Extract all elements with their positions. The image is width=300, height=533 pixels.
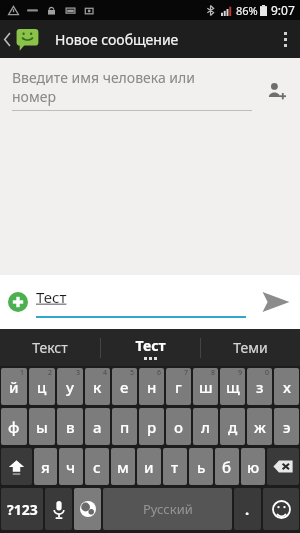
- button[interactable]: ф: [1, 408, 27, 445]
- button[interactable]: е: [112, 368, 137, 405]
- button[interactable]: ?123: [1, 488, 43, 530]
- staticText: р: [147, 417, 157, 437]
- staticText: л: [201, 417, 210, 437]
- button[interactable]: ю: [241, 448, 265, 485]
- staticText: ж: [254, 417, 266, 437]
- button[interactable]: Send: [252, 275, 300, 329]
- staticText: г: [175, 377, 182, 397]
- button[interactable]: ч: [59, 448, 83, 485]
- button[interactable]: и: [137, 448, 161, 485]
- staticText: ч: [66, 457, 76, 477]
- staticText: .: [245, 499, 250, 519]
- button[interactable]: Change keyboard language: [74, 488, 101, 530]
- button[interactable]: м: [111, 448, 135, 485]
- staticText: й: [9, 377, 19, 397]
- staticText: я: [41, 457, 50, 477]
- staticText: ы: [36, 417, 48, 437]
- staticText: 86%: [236, 3, 258, 18]
- staticText: а: [93, 417, 102, 437]
- staticText: 2: [48, 368, 53, 378]
- button[interactable]: Add attachment: [0, 284, 36, 320]
- staticText: т: [171, 457, 179, 477]
- button[interactable]: а: [85, 408, 110, 445]
- button[interactable]: в: [57, 408, 83, 445]
- staticText: н: [147, 377, 157, 397]
- button[interactable]: б: [215, 448, 239, 485]
- staticText: ?123: [7, 500, 38, 519]
- button[interactable]: Voice input: [45, 488, 72, 530]
- staticText: д: [228, 417, 238, 437]
- button[interactable]: й: [1, 368, 27, 405]
- button[interactable]: н: [139, 368, 164, 405]
- staticText: 6: [157, 368, 162, 378]
- staticText: 9:07: [271, 2, 295, 18]
- button[interactable]: ы: [29, 408, 55, 445]
- staticText: 3: [76, 368, 81, 378]
- button[interactable]: г: [166, 368, 191, 405]
- staticText: с: [93, 457, 101, 477]
- staticText: ц: [37, 377, 47, 397]
- staticText: ю: [247, 457, 260, 477]
- staticText: Тест: [36, 287, 67, 307]
- button[interactable]: э: [274, 408, 299, 445]
- button[interactable]: с: [85, 448, 109, 485]
- staticText: и: [144, 457, 154, 477]
- staticText: 5: [130, 368, 135, 378]
- button[interactable]: о: [166, 408, 191, 445]
- staticText: 7: [184, 368, 189, 378]
- staticText: х: [283, 377, 291, 397]
- staticText: п: [120, 417, 130, 437]
- staticText: Русский: [143, 500, 193, 518]
- button[interactable]: .: [234, 488, 261, 530]
- staticText: ф: [8, 417, 20, 437]
- button[interactable]: Shift: [1, 448, 32, 485]
- staticText: Введите имя человека или номер: [12, 68, 195, 106]
- staticText: Теми: [233, 338, 268, 357]
- button[interactable]: Up: [0, 20, 45, 58]
- staticText: 0: [265, 368, 270, 378]
- button[interactable]: к: [85, 368, 110, 405]
- button[interactable]: п: [112, 408, 137, 445]
- button[interactable]: Add recipient: [252, 68, 300, 114]
- staticText: Текст: [32, 338, 68, 357]
- button[interactable]: х: [274, 368, 299, 405]
- button[interactable]: ж: [247, 408, 272, 445]
- button[interactable]: д: [220, 408, 245, 445]
- button[interactable]: Emoji: [263, 488, 299, 530]
- staticText: Новое сообщение: [55, 30, 179, 49]
- staticText: 4: [103, 368, 108, 378]
- staticText: м: [117, 457, 129, 477]
- staticText: з: [256, 377, 264, 397]
- staticText: щ: [226, 377, 240, 397]
- staticText: 8: [211, 368, 216, 378]
- button[interactable]: л: [193, 408, 218, 445]
- button[interactable]: Текст: [0, 329, 100, 366]
- staticText: у: [66, 377, 74, 397]
- button[interactable]: т: [163, 448, 187, 485]
- staticText: ш: [199, 377, 213, 397]
- button[interactable]: р: [139, 408, 164, 445]
- button[interactable]: я: [34, 448, 57, 485]
- button[interactable]: Backspace: [267, 448, 299, 485]
- staticText: б: [222, 457, 232, 477]
- staticText: ь: [197, 457, 206, 477]
- button[interactable]: ш: [193, 368, 218, 405]
- staticText: Тест: [135, 336, 166, 355]
- staticText: о: [174, 417, 184, 437]
- staticText: 9: [238, 368, 243, 378]
- staticText: е: [120, 377, 129, 397]
- button[interactable]: ц: [29, 368, 55, 405]
- button[interactable]: у: [57, 368, 83, 405]
- button[interactable]: Тест: [101, 329, 200, 366]
- button[interactable]: щ: [220, 368, 245, 405]
- button[interactable]: More options: [270, 20, 300, 58]
- button[interactable]: Теми: [201, 329, 300, 366]
- staticText: в: [66, 417, 75, 437]
- staticText: 1: [20, 368, 25, 378]
- button[interactable]: ь: [189, 448, 213, 485]
- staticText: э: [283, 417, 291, 437]
- button[interactable]: з: [247, 368, 272, 405]
- staticText: к: [93, 377, 102, 397]
- button[interactable]: Русский: [103, 488, 232, 530]
